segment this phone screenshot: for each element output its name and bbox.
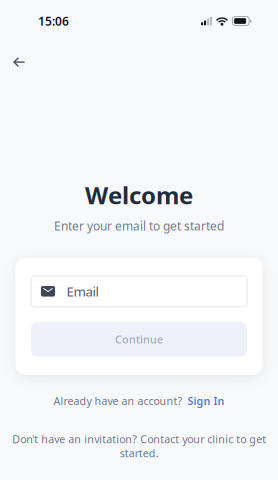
button[interactable]: Back: [4, 47, 34, 77]
staticText: Continue: [115, 332, 163, 346]
staticText: Email: [66, 282, 98, 300]
staticText: Welcome: [85, 179, 193, 211]
staticText: Sign In: [187, 394, 224, 408]
button[interactable]: Sign In: [187, 394, 224, 408]
staticText: Already have an account?: [53, 394, 182, 408]
staticText: 15:06: [38, 13, 69, 29]
button[interactable]: Continue: [31, 322, 247, 357]
staticText: Enter your email to get started: [54, 218, 224, 234]
staticText: Don't have an invitation? Contact your c…: [12, 432, 266, 460]
